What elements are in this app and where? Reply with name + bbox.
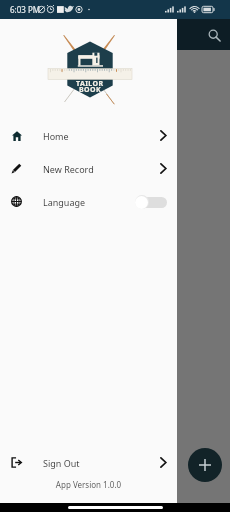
staticText: Home	[43, 130, 149, 142]
staticText: Language	[43, 196, 137, 208]
button[interactable]: New Record	[0, 152, 177, 185]
staticText: Sign Out	[43, 457, 149, 469]
button[interactable]: Language	[0, 185, 177, 218]
button[interactable]: Search	[203, 24, 225, 46]
button[interactable]: Add	[188, 448, 222, 482]
staticText: New Record	[43, 163, 149, 175]
staticText: TAILOR	[76, 79, 104, 89]
staticText: BOOK	[79, 85, 101, 95]
button[interactable]: Language toggle	[137, 185, 170, 218]
button[interactable]: Home	[0, 119, 177, 152]
button[interactable]: Sign Out	[0, 446, 177, 479]
staticText: 6:03 PM	[10, 4, 41, 15]
staticText: App Version 1.0.0	[0, 479, 177, 490]
